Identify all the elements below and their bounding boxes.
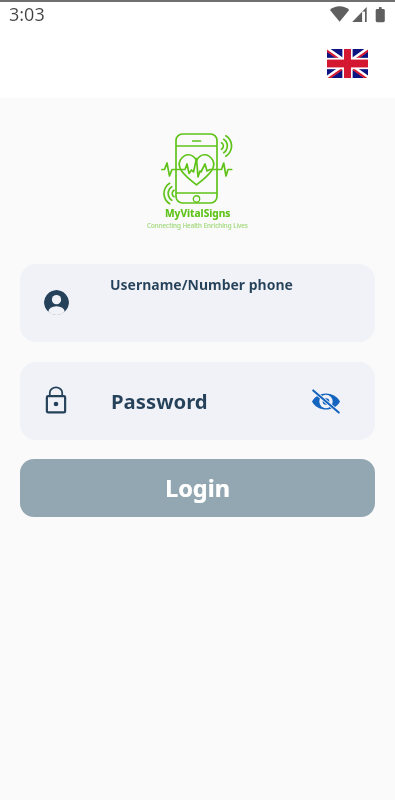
staticText: Connecting Health Enriching Lives bbox=[147, 221, 248, 230]
button[interactable]: Language: English bbox=[327, 49, 368, 78]
staticText: Login bbox=[165, 472, 230, 504]
button[interactable]: Password bbox=[20, 362, 375, 440]
staticText: MyVitalSigns bbox=[165, 206, 231, 220]
button[interactable]: Show password bbox=[304, 378, 348, 422]
staticText: Password bbox=[111, 387, 208, 415]
staticText: 3:03 bbox=[9, 2, 45, 27]
button[interactable]: Login bbox=[20, 459, 375, 517]
button[interactable]: Username/Number phone bbox=[20, 264, 375, 342]
staticText: Username/Number phone bbox=[110, 275, 293, 294]
